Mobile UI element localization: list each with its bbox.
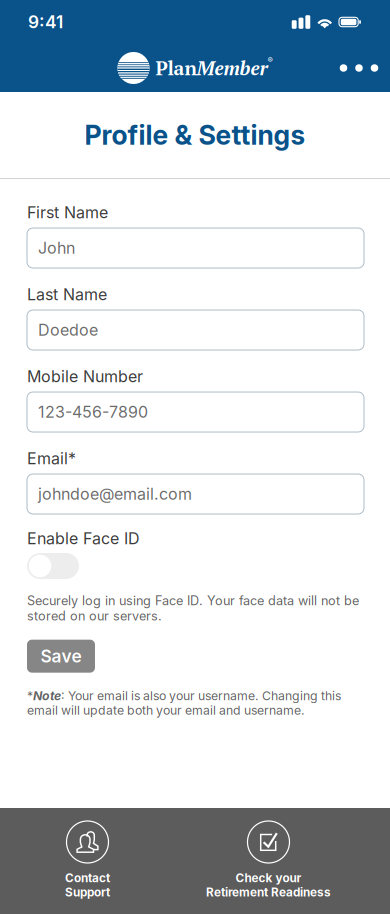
staticText: Email* (27, 449, 76, 468)
staticText: Last Name (27, 285, 107, 304)
staticText: Member (196, 55, 267, 81)
staticText: 9:41 (28, 11, 63, 32)
button[interactable]: Enable Face ID (27, 553, 79, 579)
staticText: *Note: Your email is also your username.… (27, 689, 341, 718)
button[interactable]: Check your Retirement Readiness (175, 808, 362, 914)
staticText: Doedoe (38, 320, 98, 340)
staticText: ® (267, 55, 272, 65)
staticText: Support (65, 885, 110, 899)
button[interactable]: John (27, 228, 364, 268)
button[interactable]: 123-456-7890 (27, 392, 364, 432)
staticText: 123-456-7890 (38, 402, 148, 422)
button[interactable]: More options (328, 44, 390, 92)
staticText: Profile & Settings (84, 119, 305, 151)
staticText: Retirement Readiness (206, 885, 331, 899)
staticText: Save (40, 646, 81, 667)
button[interactable]: johndoe@email.com (27, 474, 364, 514)
staticText: John (38, 238, 75, 258)
staticText: Enable Face ID (27, 529, 140, 548)
staticText: First Name (27, 203, 108, 222)
button[interactable]: Doedoe (27, 310, 364, 350)
staticText: johndoe@email.com (38, 484, 192, 504)
staticText: Mobile Number (27, 367, 143, 386)
button[interactable]: Save (27, 640, 95, 673)
button[interactable]: Contact Support (0, 808, 175, 914)
staticText: Plan (155, 55, 196, 81)
staticText: Securely log in using Face ID. Your face… (27, 593, 359, 624)
staticText: Check your (235, 871, 301, 885)
staticText: Contact (65, 871, 110, 885)
